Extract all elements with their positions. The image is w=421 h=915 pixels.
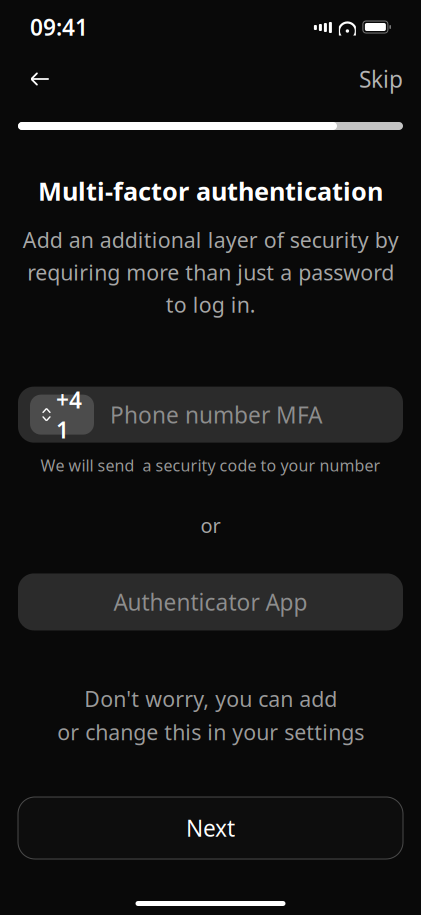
button[interactable]: Next (18, 797, 403, 859)
staticText: Add an additional layer of security by r… (22, 226, 398, 319)
button[interactable]: Authenticator App (18, 573, 403, 630)
staticText: Skip (359, 64, 403, 94)
button[interactable]: +41 (18, 387, 403, 443)
staticText: 09:41 (30, 12, 88, 42)
staticText: or (200, 512, 220, 538)
staticText: Don't worry, you can add or change this … (57, 684, 364, 746)
staticText: We will send a security code to your num… (40, 455, 380, 476)
button[interactable]: Back (18, 57, 62, 101)
staticText: Phone number MFA (110, 400, 322, 430)
staticText: +41 (56, 384, 82, 445)
staticText: Authenticator App (113, 587, 307, 617)
staticText: Multi-factor authentication (38, 174, 383, 208)
button[interactable]: Skip (359, 57, 403, 101)
staticText: Next (186, 813, 235, 843)
